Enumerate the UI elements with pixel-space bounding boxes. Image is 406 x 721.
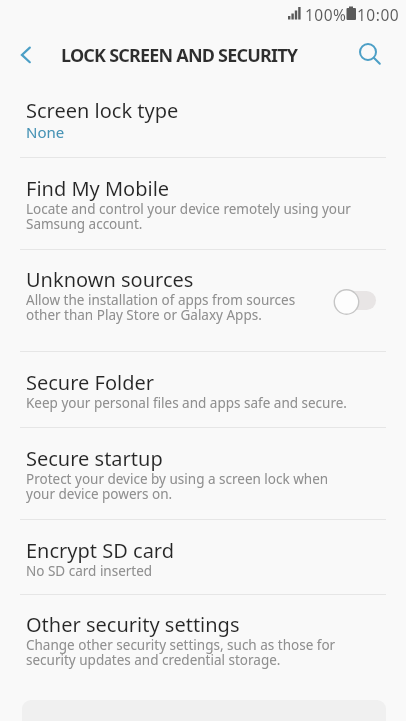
staticText: Protect your device by using a screen lo… <box>26 470 329 503</box>
staticText: 100% <box>305 4 347 25</box>
staticText: Change other security settings, such as … <box>26 636 336 669</box>
staticText: Unknown sources <box>26 266 194 293</box>
button[interactable]: Find My Mobile <box>0 158 406 250</box>
staticText: Keep your personal files and apps safe a… <box>26 394 347 412</box>
button[interactable]: Other security settings <box>0 594 406 686</box>
button[interactable]: Secure startup <box>0 428 406 520</box>
button[interactable] <box>352 38 396 72</box>
staticText: Encrypt SD card <box>26 537 175 564</box>
button[interactable]: Screen lock type <box>0 80 406 158</box>
staticText: Secure startup <box>26 445 163 472</box>
staticText: None <box>26 122 65 142</box>
button[interactable] <box>332 288 378 316</box>
button[interactable] <box>8 40 44 70</box>
staticText: Secure Folder <box>26 369 155 396</box>
staticText: Allow the installation of apps from sour… <box>26 291 296 324</box>
button[interactable]: Encrypt SD card <box>0 520 406 595</box>
staticText: 10:00 <box>357 4 400 25</box>
staticText: Screen lock type <box>26 97 179 124</box>
staticText: Locate and control your device remotely … <box>26 200 351 233</box>
staticText: Other security settings <box>26 611 240 638</box>
staticText: No SD card inserted <box>26 562 153 580</box>
staticText: LOCK SCREEN AND SECURITY <box>61 43 298 68</box>
button[interactable]: Unknown sources <box>0 249 406 352</box>
staticText: Find My Mobile <box>26 175 170 202</box>
button[interactable]: Secure Folder <box>0 352 406 428</box>
